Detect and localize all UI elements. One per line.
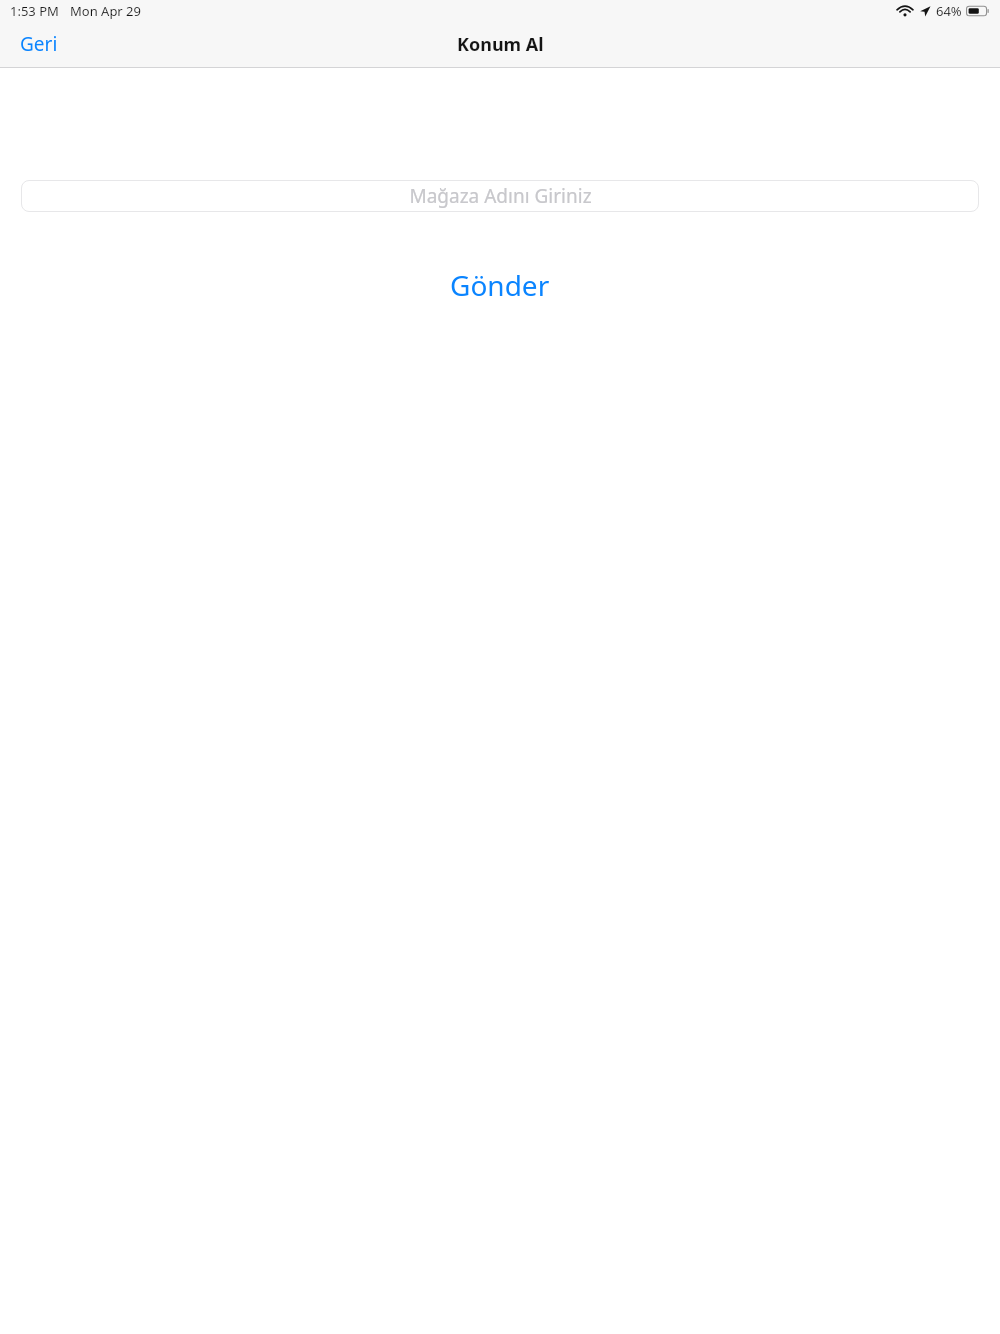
staticText: Gönder <box>450 266 550 304</box>
staticText: Geri <box>20 31 58 57</box>
button[interactable]: Mağaza Adını Giriniz <box>21 180 979 212</box>
button[interactable]: Geri <box>0 25 70 63</box>
staticText: Mağaza Adını Giriniz <box>409 183 592 209</box>
staticText: Mon Apr 29 <box>70 2 141 20</box>
button[interactable]: Gönder <box>432 261 568 309</box>
staticText: Konum Al <box>457 32 544 57</box>
staticText: 64% <box>936 2 962 20</box>
staticText: 1:53 PM <box>10 2 59 20</box>
